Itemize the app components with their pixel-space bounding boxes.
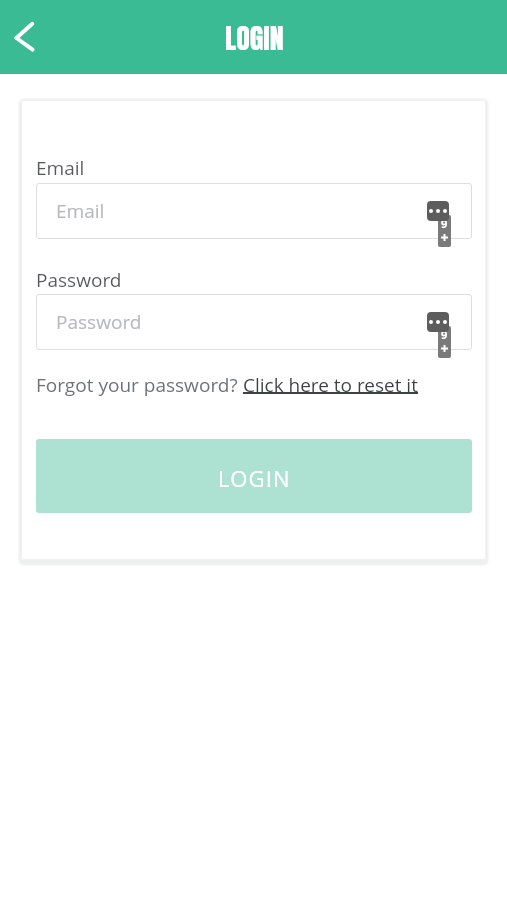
staticText: 9 [441,327,448,342]
button[interactable]: LOGIN [36,439,472,513]
button[interactable]: Autofill suggestions [427,312,457,362]
button[interactable]: Click here to reset it [243,372,418,400]
staticText: LOGIN [225,17,284,59]
button[interactable]: Navigate back [0,13,48,61]
staticText: Password [36,267,122,293]
staticText: Email [56,198,105,224]
staticText: Email [36,155,85,181]
button[interactable]: Email input [36,183,472,239]
staticText: 9 [441,216,448,231]
button[interactable]: Password input [36,294,472,350]
staticText: Forgot your password? [36,372,243,398]
button[interactable]: Autofill suggestions [427,201,457,251]
staticText: Click here to reset it [243,372,418,398]
staticText: LOGIN [218,463,291,493]
staticText: Password [56,309,142,335]
